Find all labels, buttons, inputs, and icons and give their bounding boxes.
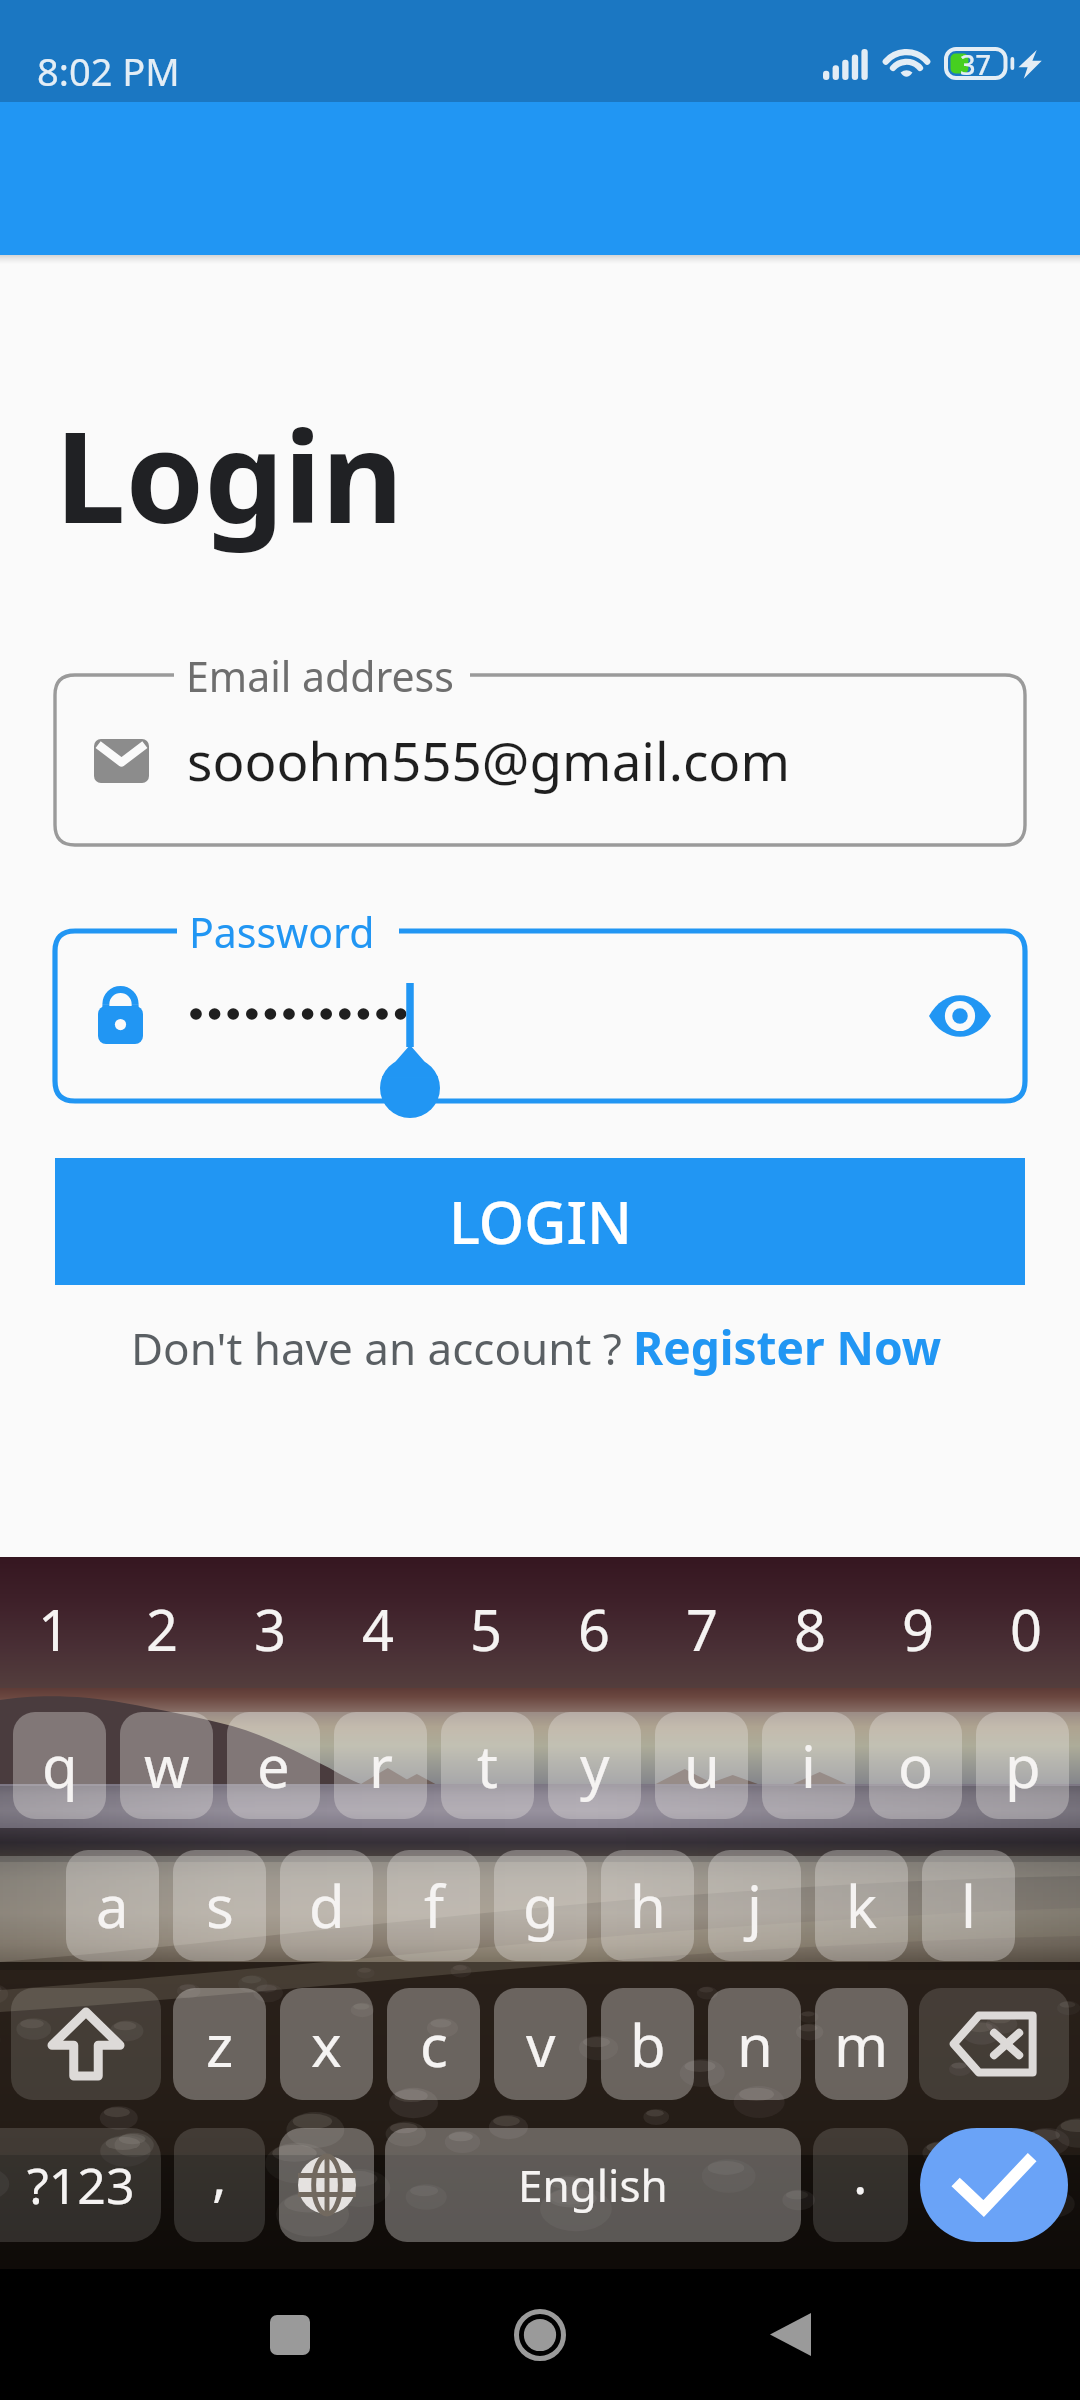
staticText: Login: [55, 388, 404, 560]
button[interactable]: e: [227, 1712, 320, 1819]
staticText: w: [144, 1726, 190, 1805]
button[interactable]: Register Now: [626, 1310, 949, 1385]
staticText: d: [309, 1866, 345, 1945]
button[interactable]: ,: [174, 2128, 265, 2242]
staticText: x: [311, 2005, 342, 2084]
button[interactable]: g: [494, 1850, 587, 1961]
button[interactable]: y: [548, 1712, 641, 1819]
staticText: LOGIN: [449, 1182, 632, 1261]
staticText: n: [737, 2005, 773, 2084]
button[interactable]: 2: [108, 1574, 216, 1684]
staticText: k: [846, 1866, 877, 1945]
button[interactable]: m: [815, 1988, 908, 2100]
button[interactable]: x: [280, 1988, 373, 2100]
staticText: a: [96, 1866, 129, 1945]
button[interactable]: 5: [432, 1574, 540, 1684]
button[interactable]: n: [708, 1988, 801, 2100]
staticText: i: [801, 1726, 816, 1805]
button[interactable]: z: [173, 1988, 266, 2100]
button[interactable]: a: [66, 1850, 159, 1961]
staticText: Email address: [186, 648, 454, 704]
button[interactable]: d: [280, 1850, 373, 1961]
button[interactable]: 9: [864, 1574, 972, 1684]
button[interactable]: p: [976, 1712, 1069, 1819]
staticText: 8:02 PM: [37, 45, 180, 97]
button[interactable]: j: [708, 1850, 801, 1961]
staticText: g: [523, 1866, 559, 1945]
button[interactable]: k: [815, 1850, 908, 1961]
staticText: 2: [146, 1591, 179, 1667]
button[interactable]: English: [385, 2128, 801, 2242]
staticText: .: [853, 2136, 868, 2210]
staticText: z: [206, 2005, 234, 2084]
staticText: u: [684, 1726, 720, 1805]
staticText: sooohm555@gmail.com: [187, 724, 790, 796]
staticText: English: [518, 2155, 668, 2215]
button[interactable]: Back: [710, 2269, 870, 2400]
staticText: 37: [960, 46, 991, 75]
button[interactable]: v: [494, 1988, 587, 2100]
staticText: Password: [189, 904, 375, 960]
staticText: h: [630, 1866, 666, 1945]
button[interactable]: w: [120, 1712, 213, 1819]
button[interactable]: ?123: [0, 2128, 161, 2242]
button[interactable]: Email address: [55, 648, 1025, 845]
button[interactable]: 8: [756, 1574, 864, 1684]
button[interactable]: Show password: [907, 952, 1013, 1080]
button[interactable]: f: [387, 1850, 480, 1961]
staticText: s: [206, 1866, 234, 1945]
button[interactable]: b: [601, 1988, 694, 2100]
staticText: ?123: [27, 2151, 135, 2219]
staticText: b: [630, 2005, 666, 2084]
button[interactable]: .: [813, 2128, 908, 2242]
staticText: p: [1005, 1726, 1041, 1805]
button[interactable]: t: [441, 1712, 534, 1819]
staticText: 9: [902, 1591, 935, 1667]
button[interactable]: i: [762, 1712, 855, 1819]
staticText: Don't have an account ?: [131, 1318, 622, 1378]
staticText: 7: [686, 1591, 719, 1667]
staticText: 6: [578, 1591, 611, 1667]
staticText: j: [747, 1866, 762, 1945]
button[interactable]: c: [387, 1988, 480, 2100]
staticText: 0: [1010, 1591, 1043, 1667]
staticText: Register Now: [633, 1316, 942, 1379]
staticText: y: [580, 1726, 610, 1805]
staticText: o: [898, 1726, 934, 1805]
staticText: c: [420, 2005, 448, 2084]
button[interactable]: Change language: [279, 2128, 374, 2242]
staticText: 4: [362, 1591, 395, 1667]
button[interactable]: 4: [324, 1574, 432, 1684]
button[interactable]: o: [869, 1712, 962, 1819]
button[interactable]: 6: [540, 1574, 648, 1684]
staticText: r: [369, 1726, 393, 1805]
button[interactable]: l: [922, 1850, 1015, 1961]
button[interactable]: r: [334, 1712, 427, 1819]
staticText: 5: [470, 1591, 503, 1667]
button[interactable]: Backspace: [919, 1988, 1069, 2100]
button[interactable]: 3: [216, 1574, 324, 1684]
staticText: 8: [794, 1591, 827, 1667]
button[interactable]: 7: [648, 1574, 756, 1684]
button[interactable]: s: [173, 1850, 266, 1961]
staticText: ,: [212, 2138, 227, 2212]
button[interactable]: Password: [55, 904, 1025, 1101]
staticText: f: [424, 1866, 444, 1945]
staticText: q: [42, 1726, 78, 1805]
staticText: t: [477, 1726, 498, 1805]
button[interactable]: Home: [460, 2269, 620, 2400]
button[interactable]: LOGIN: [55, 1158, 1025, 1285]
button[interactable]: Shift: [11, 1988, 161, 2100]
staticText: m: [834, 2005, 889, 2084]
button[interactable]: 1: [0, 1574, 108, 1684]
button[interactable]: 0: [972, 1574, 1080, 1684]
button[interactable]: Recents: [210, 2269, 370, 2400]
button[interactable]: u: [655, 1712, 748, 1819]
staticText: 3: [254, 1591, 287, 1667]
staticText: e: [257, 1726, 290, 1805]
button[interactable]: q: [13, 1712, 106, 1819]
button[interactable]: h: [601, 1850, 694, 1961]
button[interactable]: Enter: [920, 2128, 1068, 2242]
staticText: l: [961, 1866, 976, 1945]
staticText: 1: [38, 1591, 71, 1667]
